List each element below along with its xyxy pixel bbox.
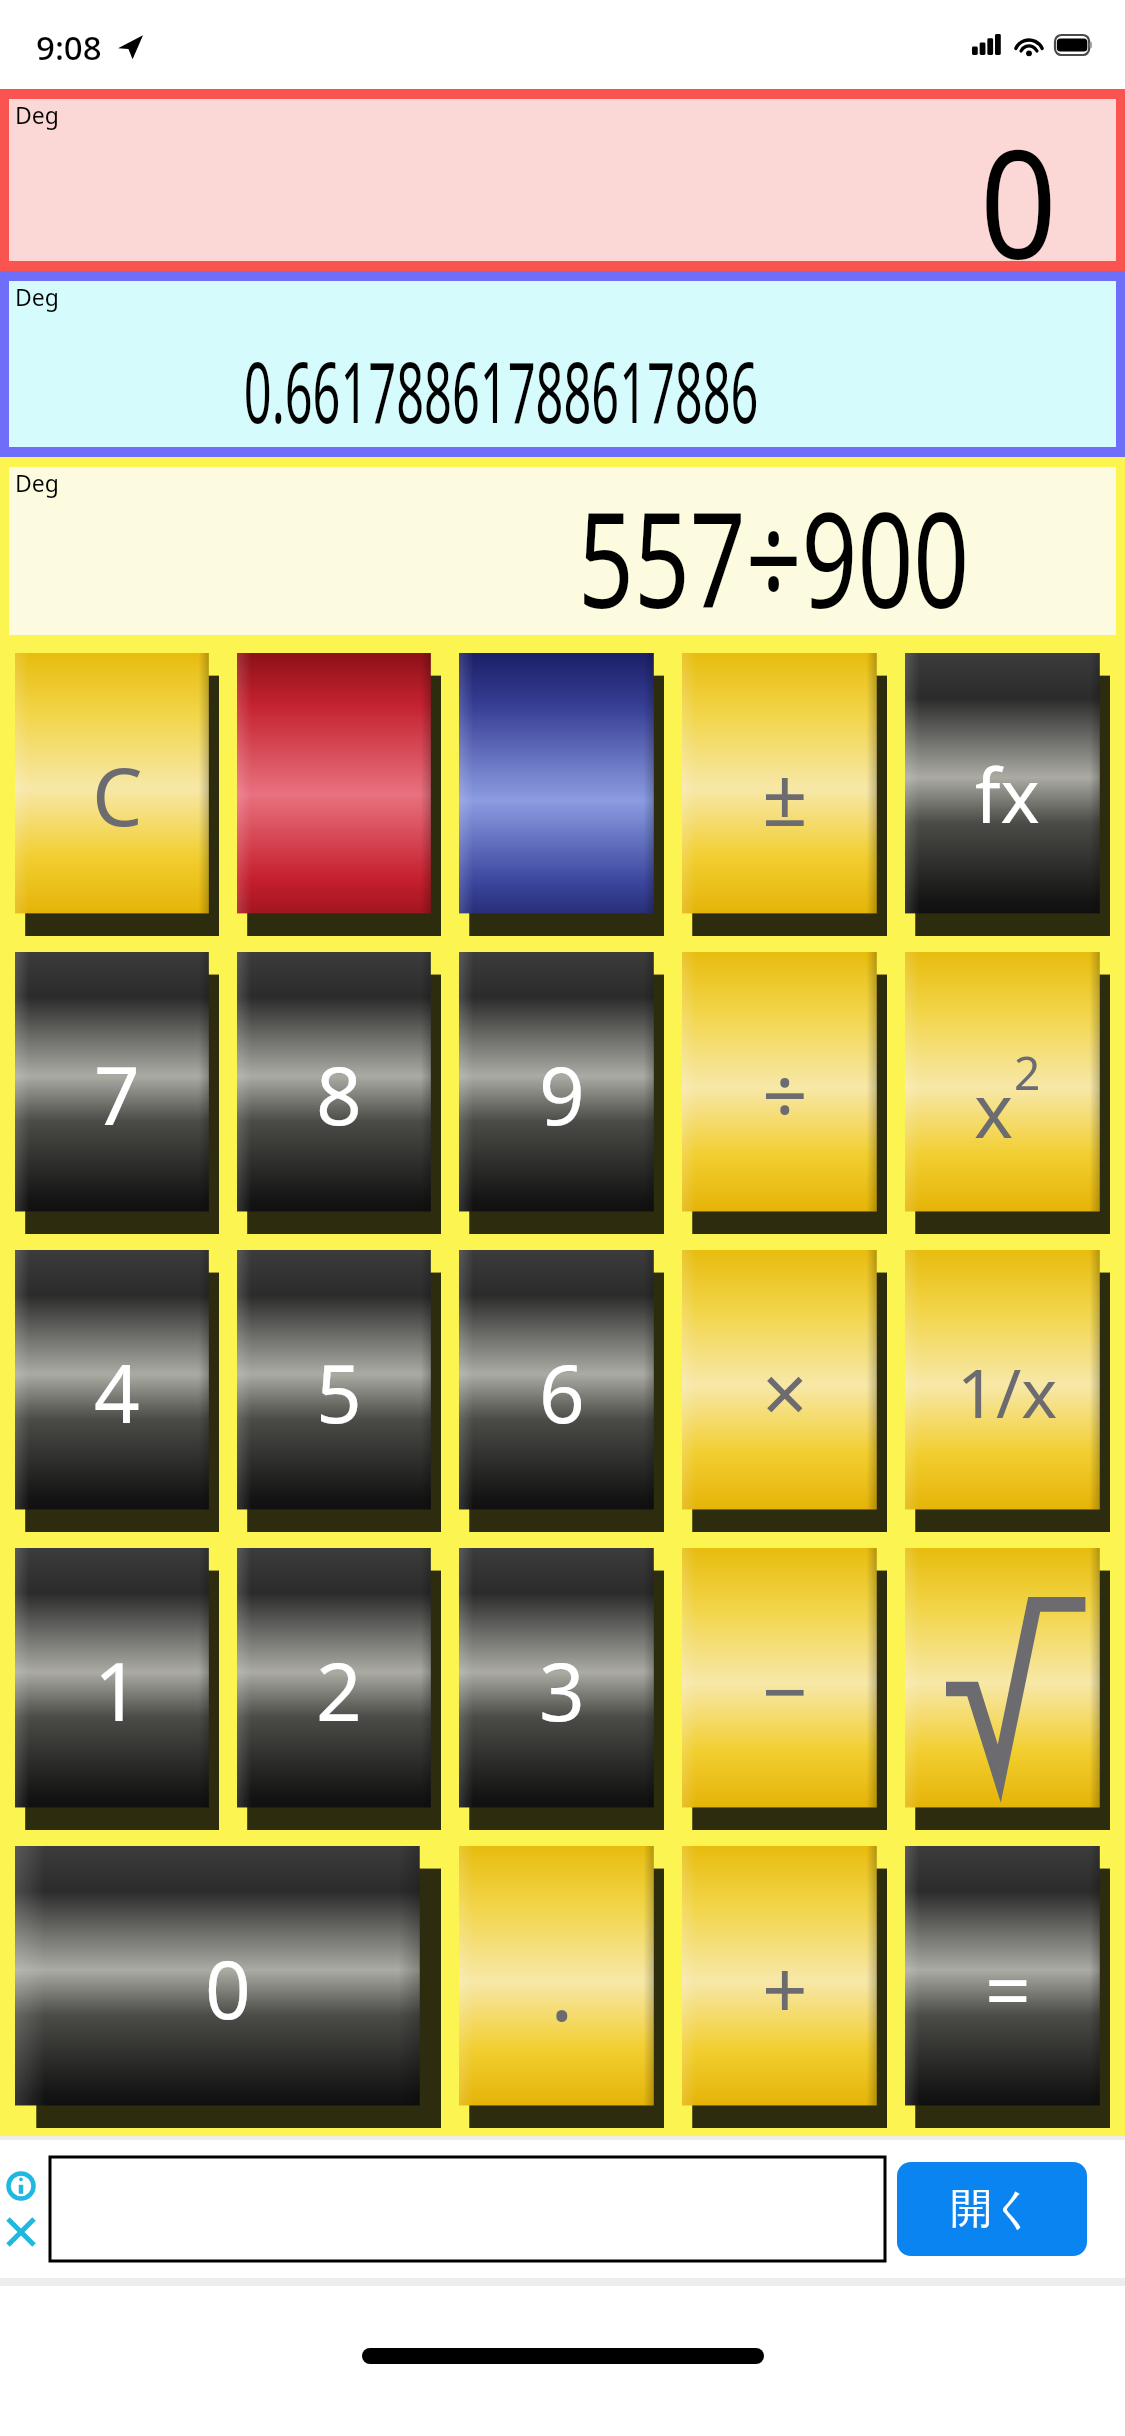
staticText: + xyxy=(762,1933,808,2042)
button[interactable]: ± xyxy=(682,653,887,936)
button[interactable]: Square root xyxy=(905,1548,1110,1830)
button[interactable]: 3 xyxy=(459,1548,664,1830)
staticText: ÷ xyxy=(762,1039,808,1148)
staticText: . xyxy=(550,1927,574,2047)
button[interactable]: Blue memory xyxy=(459,653,664,936)
staticText: 5 xyxy=(316,1337,362,1446)
staticText: 6 xyxy=(539,1337,585,1446)
button[interactable]: 8 xyxy=(237,952,441,1234)
staticText: 2 xyxy=(1014,1041,1041,1104)
staticText: 9 xyxy=(539,1039,585,1148)
button[interactable]: x xyxy=(905,952,1110,1234)
button[interactable]: Red memory xyxy=(237,653,441,936)
button[interactable]: 5 xyxy=(237,1250,441,1532)
button[interactable]: + xyxy=(682,1846,887,2128)
staticText: 7 xyxy=(94,1039,140,1148)
staticText: − xyxy=(762,1635,808,1744)
staticText: 開く xyxy=(950,2183,1035,2236)
button[interactable]: C xyxy=(15,653,219,936)
button[interactable]: . xyxy=(459,1846,664,2128)
staticText: = xyxy=(985,1933,1031,2042)
staticText: 8 xyxy=(316,1039,362,1148)
button[interactable]: 9 xyxy=(459,952,664,1234)
staticText: 1 xyxy=(94,1635,140,1744)
button[interactable]: 1 xyxy=(15,1548,219,1830)
staticText: 9:08 xyxy=(36,25,102,70)
button[interactable]: = xyxy=(905,1846,1110,2128)
button[interactable]: 4 xyxy=(15,1250,219,1532)
button[interactable]: 7 xyxy=(15,952,219,1234)
button[interactable]: 開く xyxy=(897,2162,1087,2256)
staticText: x xyxy=(974,1059,1014,1160)
staticText: 3 xyxy=(539,1635,585,1744)
button[interactable]: 2 xyxy=(237,1548,441,1830)
staticText: 1/x xyxy=(957,1345,1058,1438)
button[interactable]: × xyxy=(682,1250,887,1532)
staticText: 557÷900 xyxy=(156,467,969,635)
button[interactable]: Ad info xyxy=(6,2171,36,2201)
staticText: C xyxy=(92,740,143,849)
button[interactable]: Close ad xyxy=(6,2217,36,2247)
staticText: 0.66178861788617886 xyxy=(244,333,881,447)
staticText: Deg xyxy=(15,467,59,498)
staticText: Deg xyxy=(15,99,59,130)
staticText: 0 xyxy=(68,99,1057,261)
staticText: 2 xyxy=(316,1635,362,1744)
staticText: fx xyxy=(975,744,1040,845)
button[interactable]: 0 xyxy=(15,1846,441,2128)
staticText: Deg xyxy=(15,281,59,312)
staticText: × xyxy=(762,1337,808,1446)
button[interactable]: fx xyxy=(905,653,1110,936)
staticText: ± xyxy=(762,740,808,849)
staticText: 0 xyxy=(205,1933,251,2042)
staticText: 4 xyxy=(94,1337,140,1446)
button[interactable]: 1/x xyxy=(905,1250,1110,1532)
button[interactable]: ÷ xyxy=(682,952,887,1234)
button[interactable]: − xyxy=(682,1548,887,1830)
button[interactable]: 6 xyxy=(459,1250,664,1532)
